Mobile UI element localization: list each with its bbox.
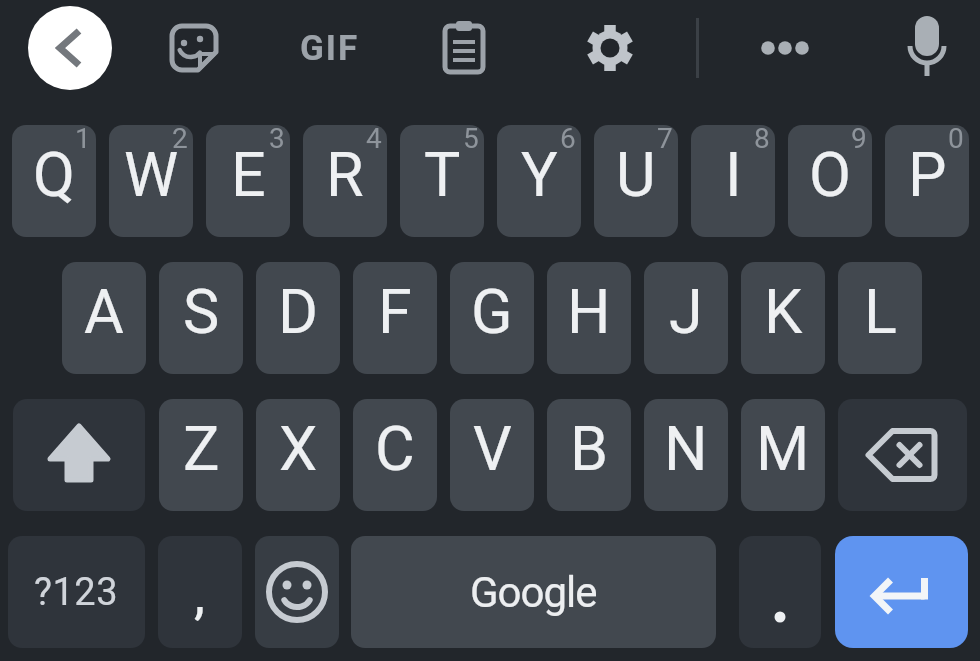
button[interactable]: [749, 12, 821, 84]
staticText: G: [471, 276, 513, 347]
staticText: Google: [470, 568, 597, 617]
staticText: ?123: [34, 570, 119, 615]
button[interactable]: Z: [159, 399, 243, 511]
staticText: S: [183, 276, 220, 347]
staticText: X: [279, 413, 318, 484]
button[interactable]: N: [644, 399, 728, 511]
button[interactable]: S: [159, 262, 243, 374]
button[interactable]: [255, 536, 339, 648]
staticText: 7: [657, 125, 673, 155]
staticText: U: [616, 139, 656, 210]
staticText: 6: [560, 125, 576, 155]
staticText: C: [375, 413, 415, 484]
staticText: M: [756, 413, 810, 484]
button[interactable]: X: [256, 399, 340, 511]
button[interactable]: ,: [158, 536, 242, 648]
button[interactable]: [891, 12, 963, 84]
staticText: 8: [754, 125, 770, 155]
button[interactable]: M: [741, 399, 825, 511]
button[interactable]: J: [644, 262, 728, 374]
button[interactable]: [158, 12, 230, 84]
staticText: ,: [194, 561, 206, 627]
button[interactable]: [739, 536, 821, 648]
button[interactable]: O: [788, 125, 872, 237]
staticText: Y: [521, 139, 558, 210]
staticText: 1: [75, 125, 91, 155]
button[interactable]: I: [691, 125, 775, 237]
staticText: Z: [183, 413, 220, 484]
button[interactable]: P: [885, 125, 969, 237]
staticText: 0: [948, 125, 964, 155]
button[interactable]: D: [256, 262, 340, 374]
button[interactable]: [835, 536, 968, 648]
staticText: 9: [851, 125, 867, 155]
button[interactable]: [28, 6, 112, 90]
staticText: F: [378, 276, 412, 347]
button[interactable]: Y: [497, 125, 581, 237]
staticText: GIF: [300, 28, 360, 69]
staticText: N: [664, 413, 708, 484]
button[interactable]: C: [353, 399, 437, 511]
staticText: I: [725, 139, 742, 210]
button[interactable]: B: [547, 399, 631, 511]
button[interactable]: F: [353, 262, 437, 374]
button[interactable]: ?123: [8, 536, 145, 648]
button[interactable]: L: [838, 262, 922, 374]
staticText: Q: [33, 139, 75, 210]
staticText: 5: [463, 125, 479, 155]
button[interactable]: W: [109, 125, 193, 237]
button[interactable]: V: [450, 399, 534, 511]
button[interactable]: [838, 399, 967, 511]
button[interactable]: GIF: [294, 18, 366, 78]
staticText: B: [570, 413, 609, 484]
staticText: D: [278, 276, 319, 347]
staticText: W: [124, 139, 179, 210]
button[interactable]: [13, 399, 145, 511]
staticText: O: [809, 139, 851, 210]
button[interactable]: Q: [12, 125, 96, 237]
button[interactable]: [574, 12, 646, 84]
button[interactable]: T: [400, 125, 484, 237]
button[interactable]: H: [547, 262, 631, 374]
button[interactable]: [428, 12, 500, 84]
staticText: L: [864, 276, 897, 347]
staticText: V: [473, 413, 512, 484]
button[interactable]: R: [303, 125, 387, 237]
staticText: H: [567, 276, 611, 347]
staticText: K: [764, 276, 803, 347]
staticText: J: [669, 276, 703, 347]
button[interactable]: A: [62, 262, 146, 374]
staticText: A: [84, 276, 124, 347]
button[interactable]: Google: [351, 536, 716, 648]
staticText: E: [231, 139, 266, 210]
staticText: 2: [172, 125, 188, 155]
button[interactable]: U: [594, 125, 678, 237]
staticText: R: [326, 139, 364, 210]
staticText: P: [908, 139, 947, 210]
staticText: 4: [366, 125, 382, 155]
button[interactable]: K: [741, 262, 825, 374]
button[interactable]: E: [206, 125, 290, 237]
button[interactable]: G: [450, 262, 534, 374]
staticText: T: [424, 139, 461, 210]
staticText: 3: [269, 125, 285, 155]
